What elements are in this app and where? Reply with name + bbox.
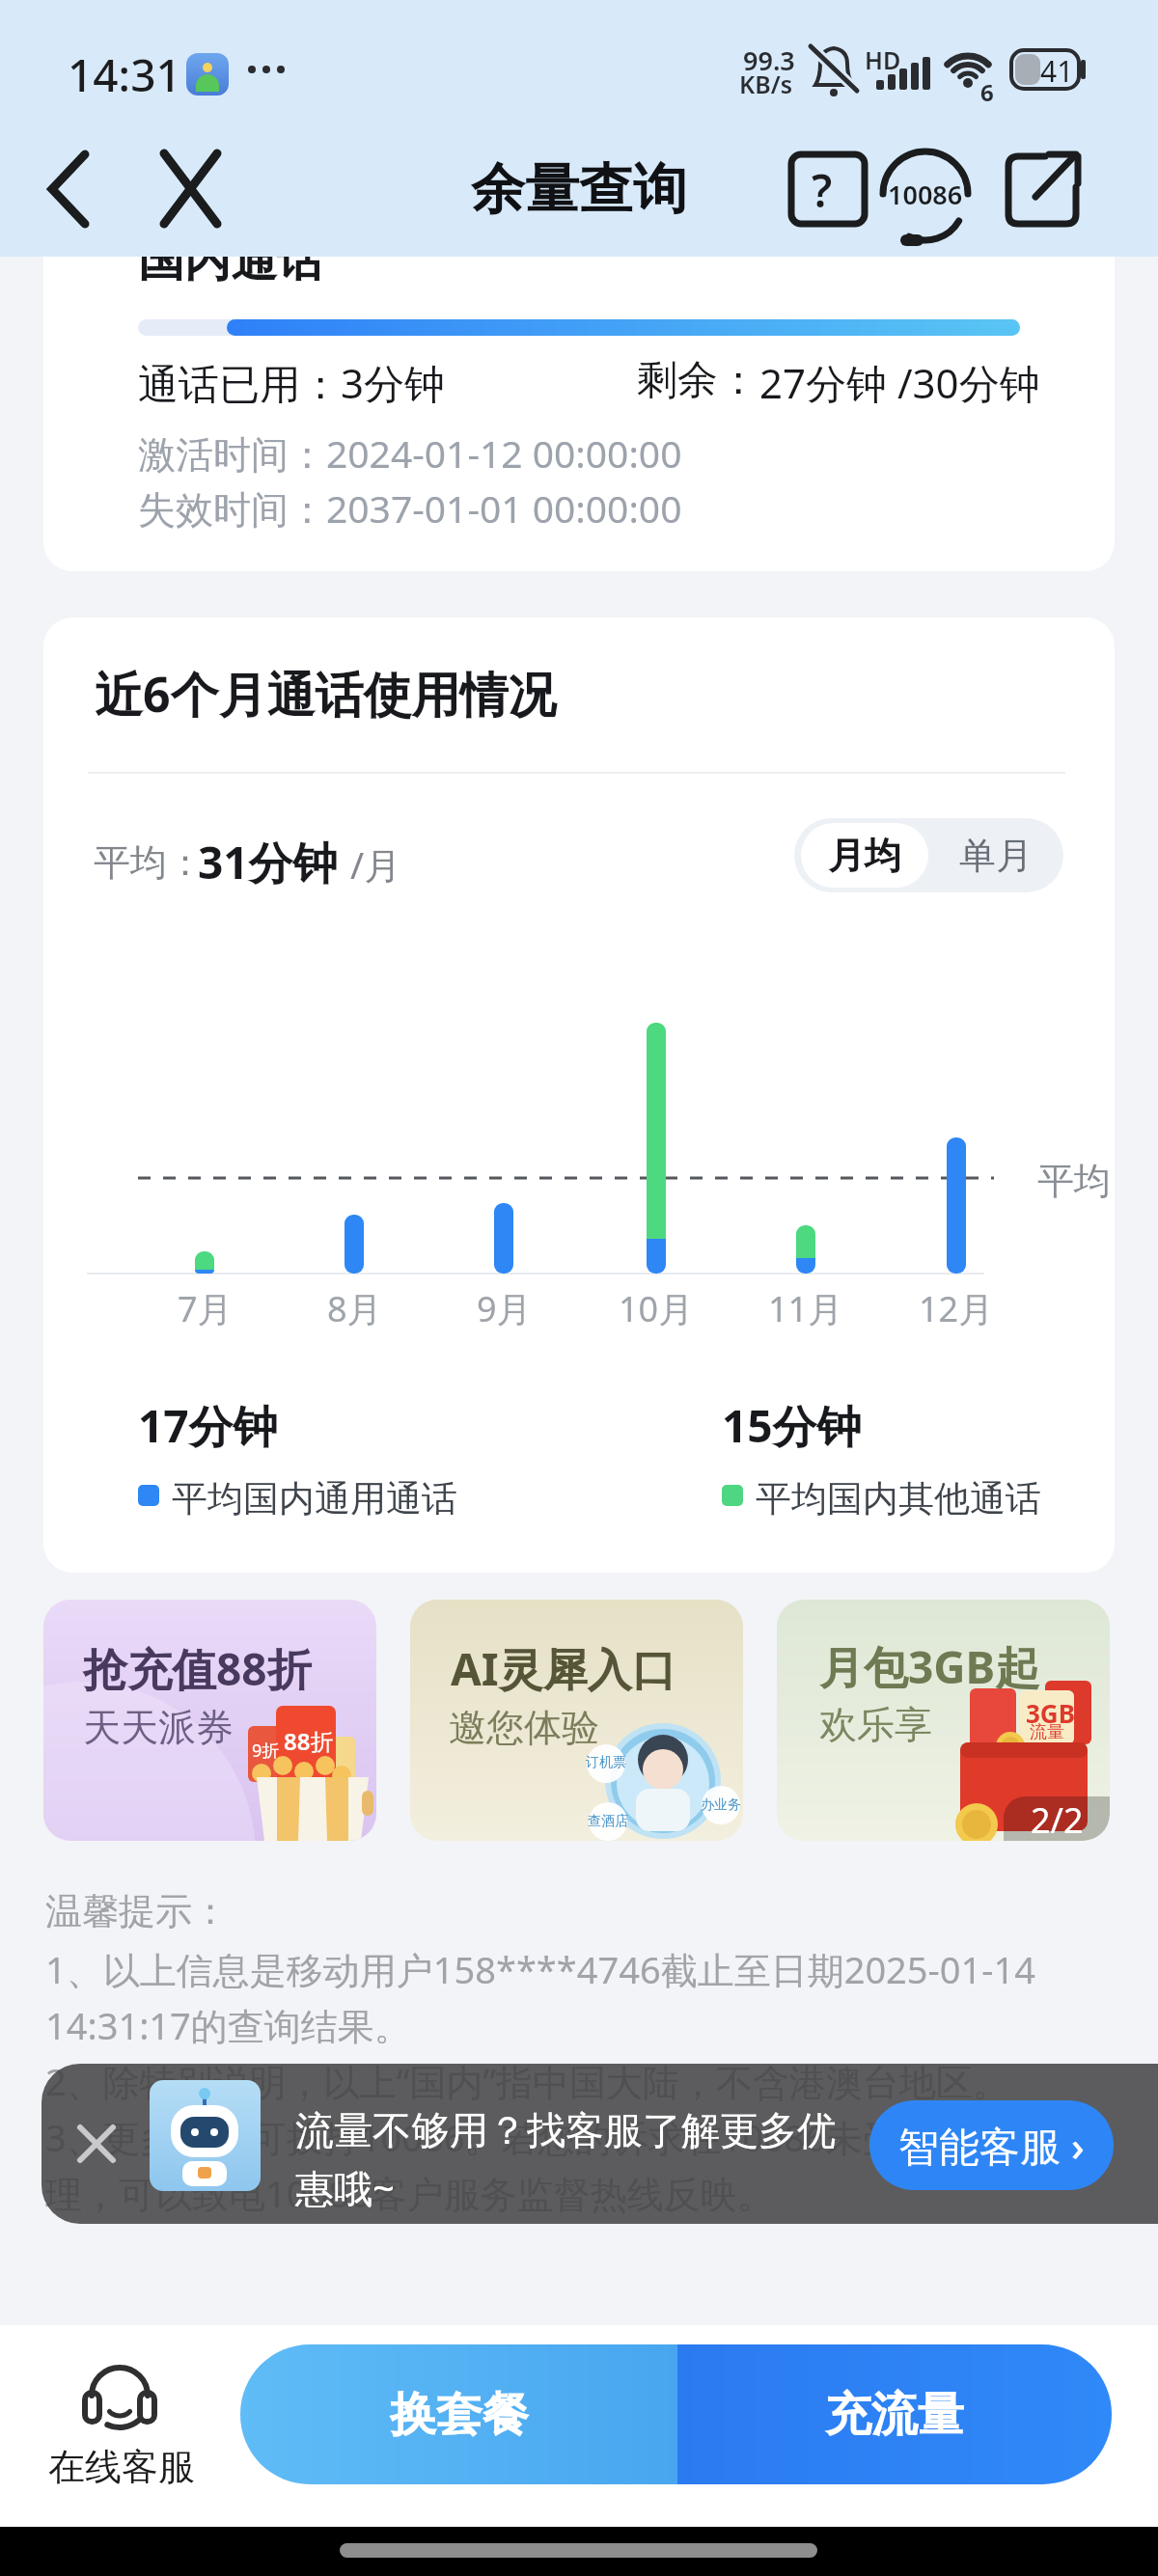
- staticText: AI灵犀入口: [451, 1638, 676, 1699]
- button[interactable]: [999, 145, 1086, 236]
- button[interactable]: 月均: [801, 823, 928, 888]
- staticText: 欢乐享: [819, 1701, 932, 1748]
- staticText: 国内通话: [138, 257, 323, 289]
- button[interactable]: [782, 145, 873, 236]
- button[interactable]: 单月: [928, 823, 1063, 888]
- staticText: 99.3: [743, 42, 795, 78]
- staticText: 抢充值88折: [83, 1638, 312, 1699]
- staticText: 流量: [1030, 1721, 1064, 1743]
- staticText: 2、除特别说明，以上“国内”指中国大陆，不含港澳台地区。: [45, 2056, 1010, 2106]
- staticText: 31分钟: [198, 832, 338, 892]
- staticText: 11月: [768, 1285, 843, 1332]
- button[interactable]: 充流量: [677, 2344, 1112, 2484]
- staticText: 88折: [284, 1725, 334, 1757]
- staticText: 失效时间：2037-01-01 00:00:00: [138, 482, 682, 534]
- button[interactable]: 抢充值88折: [43, 1600, 376, 1841]
- staticText: 剩余：: [637, 355, 758, 406]
- staticText: 平均: [1037, 1158, 1111, 1204]
- staticText: 理，可以致电10080客户服务监督热线反映。: [45, 2168, 774, 2218]
- staticText: 月包3GB起: [819, 1636, 1040, 1697]
- staticText: 换套餐: [390, 2386, 529, 2444]
- button[interactable]: 流量不够用？找客服了解更多优: [41, 2064, 1158, 2224]
- staticText: ?: [812, 160, 833, 221]
- button[interactable]: [29, 135, 106, 241]
- staticText: 6: [980, 76, 994, 108]
- staticText: 办业务: [701, 1796, 741, 1814]
- staticText: /月: [350, 839, 401, 890]
- staticText: 月均: [828, 833, 901, 879]
- staticText: 激活时间：2024-01-12 00:00:00: [138, 427, 682, 479]
- button[interactable]: AI灵犀入口: [410, 1600, 743, 1841]
- staticText: 8月: [327, 1285, 382, 1332]
- button[interactable]: 换套餐: [240, 2344, 677, 2484]
- staticText: 智能客服 ›: [898, 2118, 1085, 2173]
- button[interactable]: 国内通话: [43, 257, 1115, 571]
- button[interactable]: 智能客服 ›: [869, 2100, 1114, 2190]
- staticText: 近6个月通话使用情况: [95, 661, 557, 726]
- staticText: 平均国内通用通话: [172, 1476, 457, 1521]
- button[interactable]: 在线客服: [48, 2344, 212, 2499]
- staticText: 14:31:17的查询结果。: [45, 2000, 411, 2050]
- staticText: 充流量: [825, 2386, 964, 2444]
- staticText: 3、更多优惠可拨打10086。若您的诉求在10086未受: [45, 2112, 900, 2162]
- button[interactable]: 月包3GB起: [777, 1600, 1110, 1841]
- staticText: 通话已用：3分钟: [138, 355, 446, 410]
- staticText: 7月: [178, 1285, 233, 1332]
- staticText: 3GB: [1026, 1696, 1075, 1730]
- button[interactable]: [145, 135, 236, 241]
- staticText: 订机票: [586, 1754, 626, 1771]
- staticText: 17分钟: [138, 1395, 278, 1456]
- staticText: 天天派券: [83, 1704, 234, 1751]
- staticText: 9折: [252, 1739, 280, 1763]
- staticText: 在线客服: [48, 2444, 195, 2490]
- staticText: 平均：: [94, 839, 204, 886]
- staticText: 查酒店: [588, 1813, 628, 1830]
- staticText: 15分钟: [722, 1395, 862, 1456]
- staticText: 邀您体验: [449, 1704, 599, 1751]
- staticText: 12月: [919, 1285, 994, 1332]
- staticText: 余量查询: [471, 155, 687, 224]
- staticText: KB/s: [739, 68, 792, 100]
- staticText: 1、以上信息是移动用户158****4746截止至日期2025-01-14: [45, 1944, 1036, 1994]
- staticText: 41: [1040, 51, 1074, 91]
- staticText: 10月: [619, 1285, 694, 1332]
- staticText: 温馨提示：: [45, 1888, 229, 1934]
- staticText: 9月: [477, 1285, 532, 1332]
- staticText: HD: [865, 43, 901, 76]
- staticText: 惠哦~: [295, 2161, 395, 2214]
- staticText: 10086: [888, 177, 963, 212]
- staticText: 27分钟 /30分钟: [759, 355, 1040, 410]
- button[interactable]: [873, 140, 984, 246]
- staticText: 平均国内其他通话: [756, 1476, 1041, 1521]
- staticText: 单月: [959, 833, 1033, 879]
- staticText: 2/2: [1031, 1796, 1084, 1841]
- staticText: 流量不够用？找客服了解更多优: [295, 2106, 836, 2154]
- staticText: 14:31: [68, 44, 181, 105]
